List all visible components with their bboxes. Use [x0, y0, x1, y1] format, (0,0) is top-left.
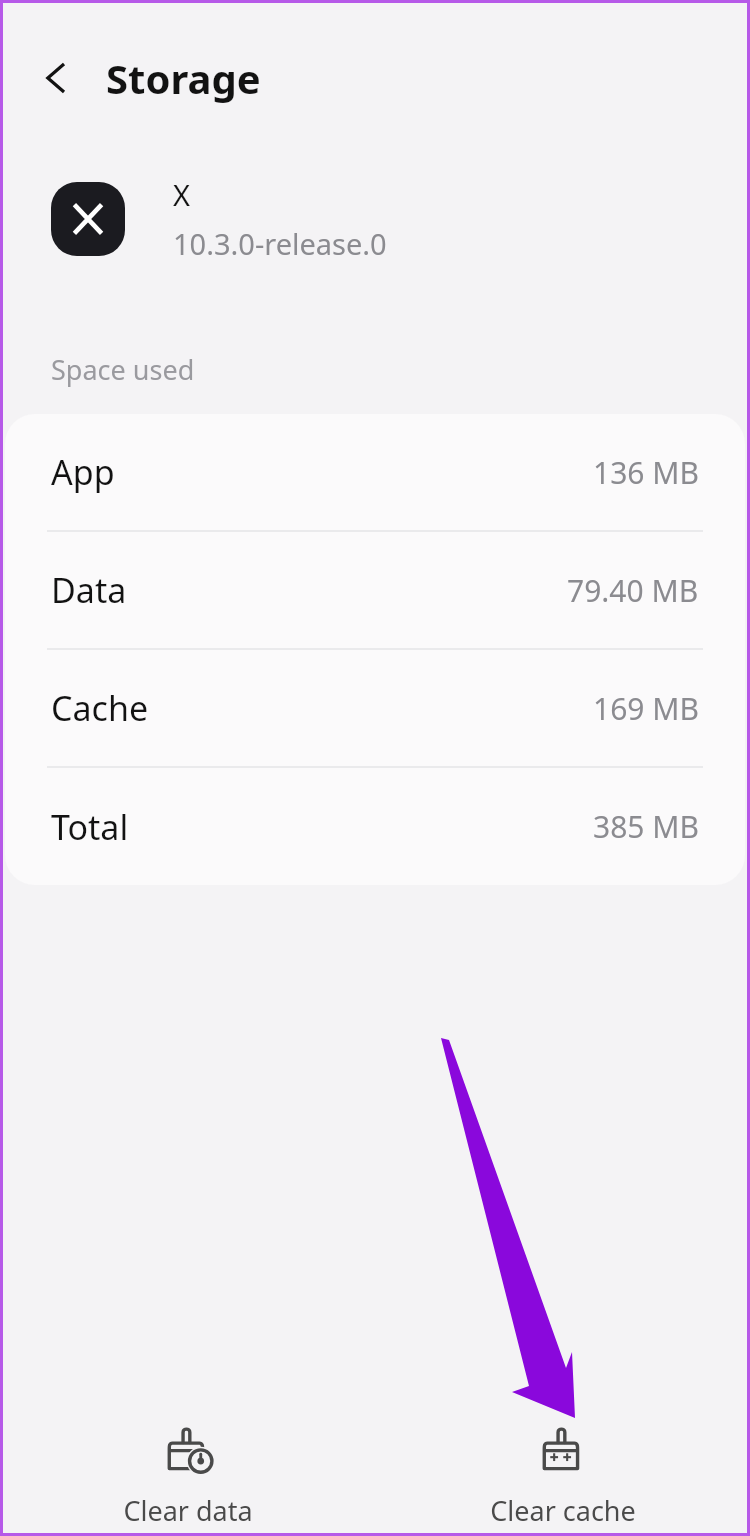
staticText: Data [51, 567, 127, 613]
button[interactable]: Back [30, 52, 82, 104]
staticText: Space used [51, 351, 195, 388]
staticText: Clear data [123, 1492, 253, 1529]
staticText: 385 MB [593, 806, 699, 847]
button[interactable]: Data [5, 532, 745, 650]
staticText: 169 MB [593, 688, 699, 729]
button[interactable]: App [5, 414, 745, 532]
staticText: 79.40 MB [567, 570, 699, 611]
staticText: Total [51, 804, 129, 850]
staticText: Storage [106, 51, 261, 105]
staticText: Clear cache [490, 1492, 636, 1529]
staticText: 10.3.0-release.0 [173, 224, 387, 263]
button[interactable]: Clear cache [375, 1420, 750, 1536]
staticText: Cache [51, 685, 149, 731]
staticText: 136 MB [593, 452, 699, 493]
button[interactable]: Total [5, 768, 745, 885]
staticText: X [173, 175, 190, 214]
staticText: App [51, 449, 115, 495]
button[interactable]: Clear data [0, 1420, 375, 1536]
button[interactable]: Cache [5, 650, 745, 768]
